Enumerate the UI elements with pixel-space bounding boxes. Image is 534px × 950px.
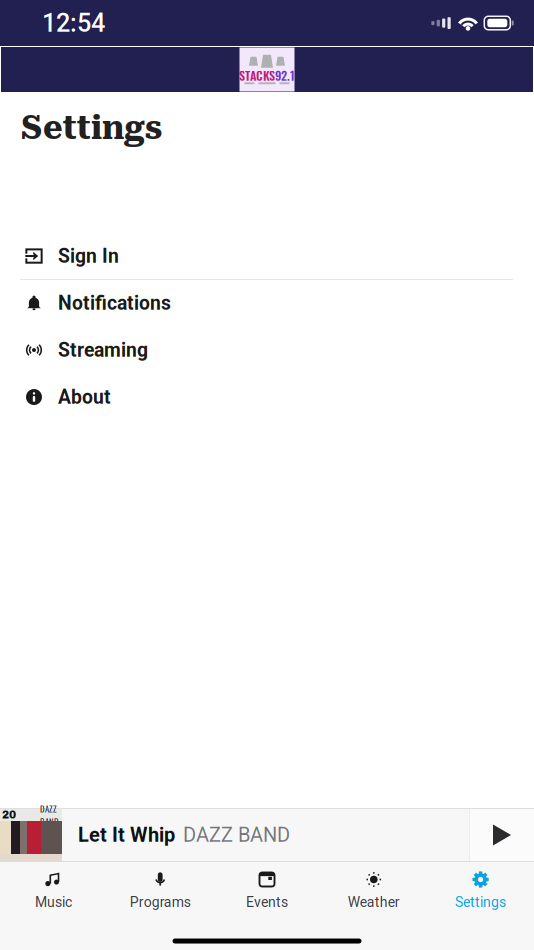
staticText: 12:54 (42, 8, 105, 38)
button[interactable]: About (0, 374, 534, 421)
button[interactable]: Weather (320, 862, 427, 919)
button[interactable]: Notifications (0, 280, 534, 327)
staticText: Music (35, 894, 72, 910)
staticText: Settings (21, 108, 162, 147)
staticText: Programs (130, 894, 191, 910)
button[interactable]: Programs (107, 862, 214, 919)
staticText: Settings (455, 894, 506, 910)
staticText: STACKS (239, 66, 275, 84)
staticText: 20 (2, 809, 16, 821)
button[interactable]: Music (0, 862, 107, 919)
staticText: 92.1 (275, 66, 295, 84)
button[interactable]: Settings (427, 862, 534, 919)
button[interactable]: Events (214, 862, 320, 919)
button[interactable]: Let It Whip (62, 809, 469, 861)
staticText: Sign In (58, 245, 119, 267)
staticText: Let It Whip (78, 823, 175, 847)
staticText: About (58, 386, 111, 408)
staticText: Events (246, 894, 288, 910)
button[interactable]: Sign In (0, 233, 534, 280)
staticText: Notifications (58, 292, 171, 314)
staticText: DAZZ BAND (40, 802, 59, 828)
staticText: DAZZ BAND (183, 823, 290, 847)
staticText: Streaming (58, 339, 148, 361)
button[interactable]: Streaming (0, 327, 534, 374)
staticText: Weather (348, 894, 400, 910)
button[interactable]: Play (470, 809, 534, 861)
